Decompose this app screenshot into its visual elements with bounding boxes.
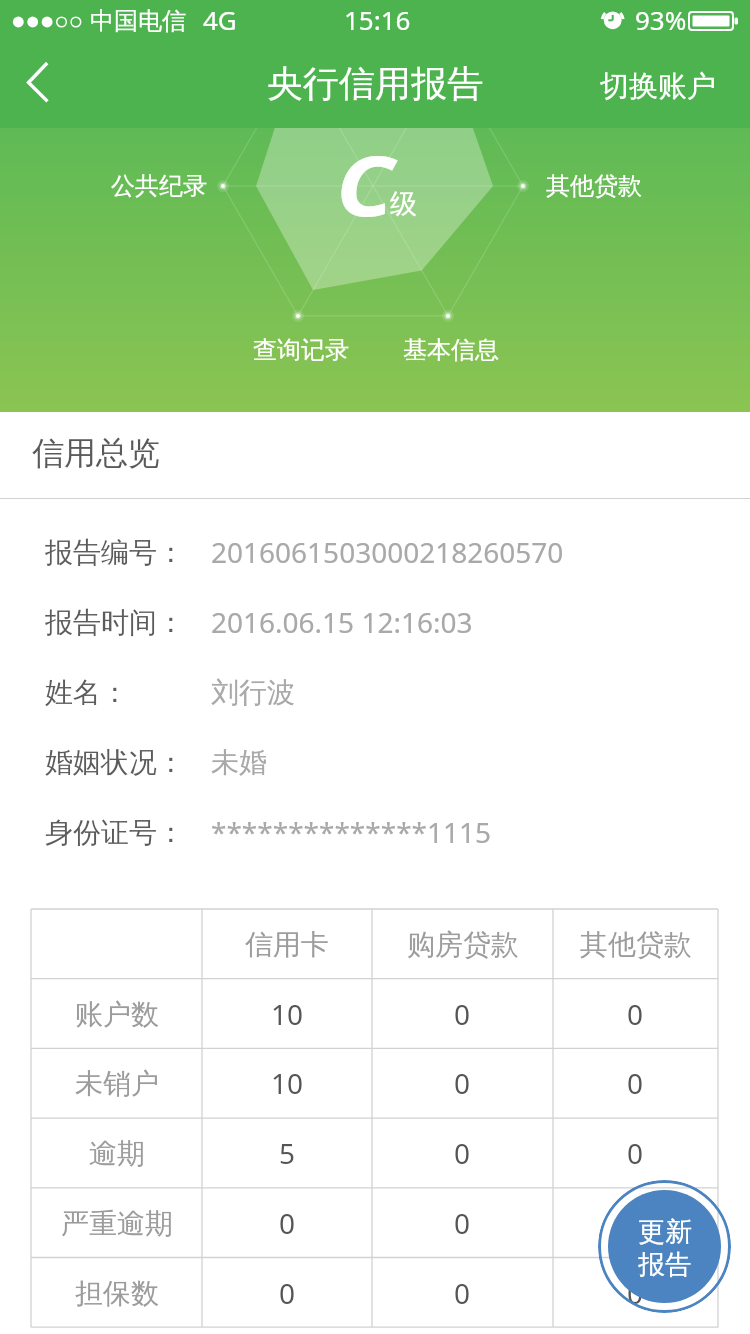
staticText: 0 (454, 995, 471, 1033)
staticText: 婚姻状况： (45, 745, 185, 780)
staticText: 购房贷款 (407, 927, 519, 962)
staticText: 更新 报告 (638, 1215, 692, 1282)
staticText: 0 (627, 1064, 644, 1102)
staticText: C (336, 128, 395, 240)
button[interactable]: 查询记录 (253, 331, 349, 369)
button[interactable]: 更新 报告 (598, 1180, 731, 1313)
staticText: 0 (454, 1134, 471, 1172)
button[interactable]: 切换账户 (592, 60, 724, 113)
staticText: 0 (454, 1064, 471, 1102)
staticText: 0 (279, 1274, 296, 1312)
staticText: 0 (454, 1274, 471, 1312)
staticText: 严重逾期 (61, 1206, 173, 1241)
staticText: 央行信用报告 (0, 61, 750, 106)
button[interactable]: 信用总览 (32, 433, 160, 485)
staticText: 0 (627, 1274, 644, 1312)
button[interactable]: 其他贷款 (546, 167, 642, 205)
staticText: 查询记录 (253, 335, 349, 365)
staticText: 0 (627, 995, 644, 1033)
staticText: 信用卡 (245, 927, 329, 962)
staticText: 账户数 (75, 997, 159, 1032)
staticText: 15:16 (344, 2, 411, 37)
button[interactable]: 返回 (8, 56, 68, 116)
staticText: 基本信息 (403, 335, 499, 365)
staticText: 报告编号： (45, 535, 185, 570)
staticText: 10 (271, 1064, 304, 1102)
staticText: 公共纪录 (111, 171, 207, 201)
staticText: 其他贷款 (546, 171, 642, 201)
staticText: 姓名： (45, 675, 129, 710)
staticText: 10 (271, 995, 304, 1033)
staticText: 其他贷款 (580, 927, 692, 962)
staticText: 0 (279, 1204, 296, 1242)
staticText: 2016061503000218260570 (211, 533, 564, 571)
staticText: 身份证号： (45, 815, 185, 850)
button[interactable]: 基本信息 (403, 331, 499, 369)
staticText: 未婚 (211, 745, 267, 780)
staticText: 0 (454, 1204, 471, 1242)
staticText: 93% (635, 2, 687, 37)
staticText: 逾期 (89, 1136, 145, 1171)
staticText: 0 (627, 1204, 644, 1242)
staticText: 5 (279, 1134, 296, 1172)
staticText: 4G (203, 2, 237, 37)
staticText: 担保数 (75, 1276, 159, 1311)
staticText: 中国电信 (90, 6, 186, 36)
staticText: 信用总览 (32, 433, 160, 473)
staticText: 切换账户 (600, 68, 716, 105)
staticText: 未销户 (75, 1066, 159, 1101)
staticText: **************1115 (211, 813, 492, 851)
staticText: 2016.06.15 12:16:03 (211, 603, 473, 641)
button[interactable]: 公共纪录 (111, 167, 207, 205)
staticText: 刘行波 (211, 675, 295, 710)
staticText: 级 (390, 187, 417, 221)
staticText: 报告时间： (45, 605, 185, 640)
staticText: 0 (627, 1134, 644, 1172)
